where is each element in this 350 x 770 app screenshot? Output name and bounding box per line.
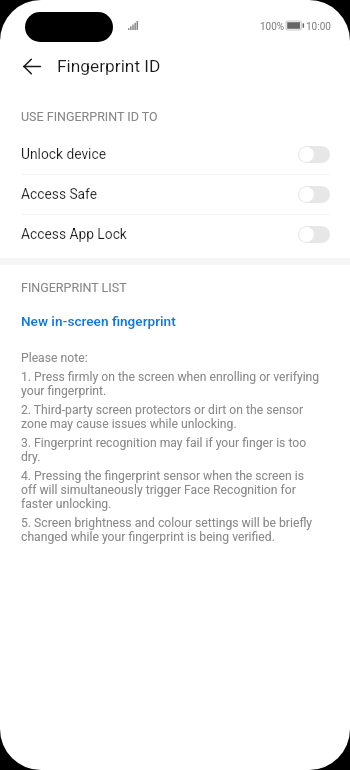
staticText: Access App Lock <box>21 226 127 242</box>
staticText: 100% <box>260 21 285 33</box>
staticText: Fingerprint ID <box>57 56 161 76</box>
staticText: Unlock device <box>21 146 107 162</box>
button[interactable]: Back <box>11 45 53 87</box>
staticText: 3. Fingerprint recognition may fail if y… <box>21 436 321 464</box>
button[interactable]: Unlock device <box>0 134 350 174</box>
staticText: USE FINGERPRINT ID TO <box>21 109 158 124</box>
staticText: Access Safe <box>21 186 98 202</box>
staticText: New in-screen fingerprint <box>21 313 176 329</box>
staticText: 4. Pressing the fingerprint sensor when … <box>21 469 321 511</box>
staticText: 2. Third-party screen protectors or dirt… <box>21 403 321 431</box>
button[interactable]: New in-screen fingerprint <box>0 308 350 334</box>
staticText: 1. Press firmly on the screen when enrol… <box>21 370 321 398</box>
button[interactable]: Access App Lock <box>0 214 350 254</box>
staticText: 5. Screen brightness and colour settings… <box>21 516 321 544</box>
button[interactable]: Access Safe <box>0 174 350 214</box>
staticText: 10:00 <box>306 21 331 33</box>
staticText: Please note: <box>21 351 88 365</box>
staticText: FINGERPRINT LIST <box>21 280 127 295</box>
